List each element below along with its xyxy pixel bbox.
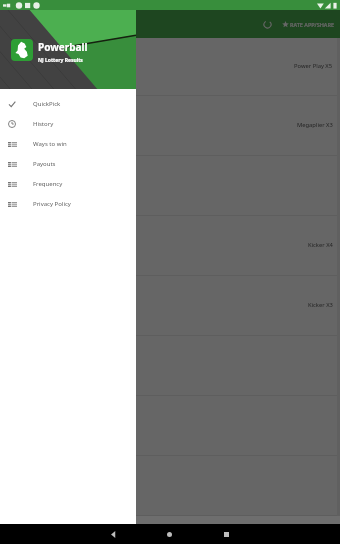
staticText: Megaplier X3 (297, 121, 333, 129)
button[interactable] (0, 156, 340, 216)
staticText: RATE APP/SHARE (290, 21, 334, 28)
button[interactable]: Kicker X3 (0, 276, 340, 336)
staticText: Powerball (38, 40, 88, 54)
staticText: Power Play X5 (294, 62, 333, 70)
staticText: Frequency (33, 180, 63, 188)
button[interactable] (0, 336, 340, 396)
button[interactable]: Payouts (0, 154, 136, 174)
button[interactable]: Megaplier X3 (0, 96, 340, 156)
button[interactable] (0, 456, 340, 516)
staticText: History (33, 120, 54, 128)
button[interactable]: RATE APP/SHARE (281, 17, 335, 32)
button[interactable]: Recents (198, 524, 255, 544)
button[interactable]: Home (141, 524, 198, 544)
staticText: NJ Lottery Results (38, 57, 83, 64)
button[interactable] (0, 396, 340, 456)
staticText: Kicker X3 (308, 301, 333, 309)
button[interactable]: Privacy Policy (0, 194, 136, 214)
button[interactable] (0, 516, 340, 544)
staticText: Payouts (33, 160, 56, 168)
button[interactable]: Kicker X4 (0, 216, 340, 276)
staticText: QuickPick (33, 100, 61, 108)
button[interactable]: Power Play X5 (0, 38, 340, 96)
button[interactable]: History (0, 114, 136, 134)
button[interactable]: Frequency (0, 174, 136, 194)
staticText: Ways to win (33, 140, 67, 148)
button[interactable]: Back (85, 524, 141, 544)
other: Back (110, 531, 117, 538)
button[interactable]: Ways to win (0, 134, 136, 154)
other: Home (167, 532, 172, 537)
button[interactable]: Refresh (259, 16, 275, 32)
button[interactable]: QuickPick (0, 94, 136, 114)
staticText: Kicker X4 (308, 241, 333, 249)
staticText: Privacy Policy (33, 200, 71, 208)
